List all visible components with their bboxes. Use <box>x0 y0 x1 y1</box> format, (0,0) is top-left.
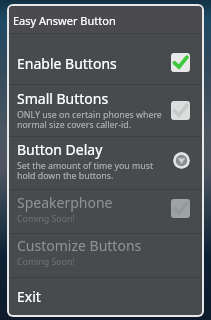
button[interactable]: Customize Buttons <box>9 234 202 277</box>
button[interactable]: Choose button delay <box>173 152 190 169</box>
staticText: Speakerphone <box>17 193 113 212</box>
button[interactable]: Small Buttons <box>9 85 202 136</box>
button[interactable]: Enable Buttons <box>171 53 190 72</box>
staticText: Button Delay <box>17 140 103 159</box>
button[interactable]: Small Buttons <box>171 101 190 120</box>
staticText: Easy Answer Button <box>13 13 116 28</box>
staticText: Set the amount of time you must hold dow… <box>17 160 154 181</box>
staticText: Coming Soon! <box>17 213 75 225</box>
staticText: Exit <box>17 287 41 306</box>
button[interactable]: Enable Buttons <box>9 34 202 84</box>
staticText: Customize Buttons <box>17 236 142 255</box>
button[interactable]: Speakerphone <box>9 190 202 233</box>
staticText: Coming Soon! <box>17 256 75 268</box>
button[interactable]: Exit <box>9 278 202 315</box>
button[interactable]: Button Delay <box>9 137 202 189</box>
staticText: ONLY use on certain phones where normal … <box>17 109 162 130</box>
staticText: Enable Buttons <box>17 54 171 73</box>
staticText: Small Buttons <box>17 89 109 108</box>
button[interactable]: Speakerphone <box>171 199 190 218</box>
